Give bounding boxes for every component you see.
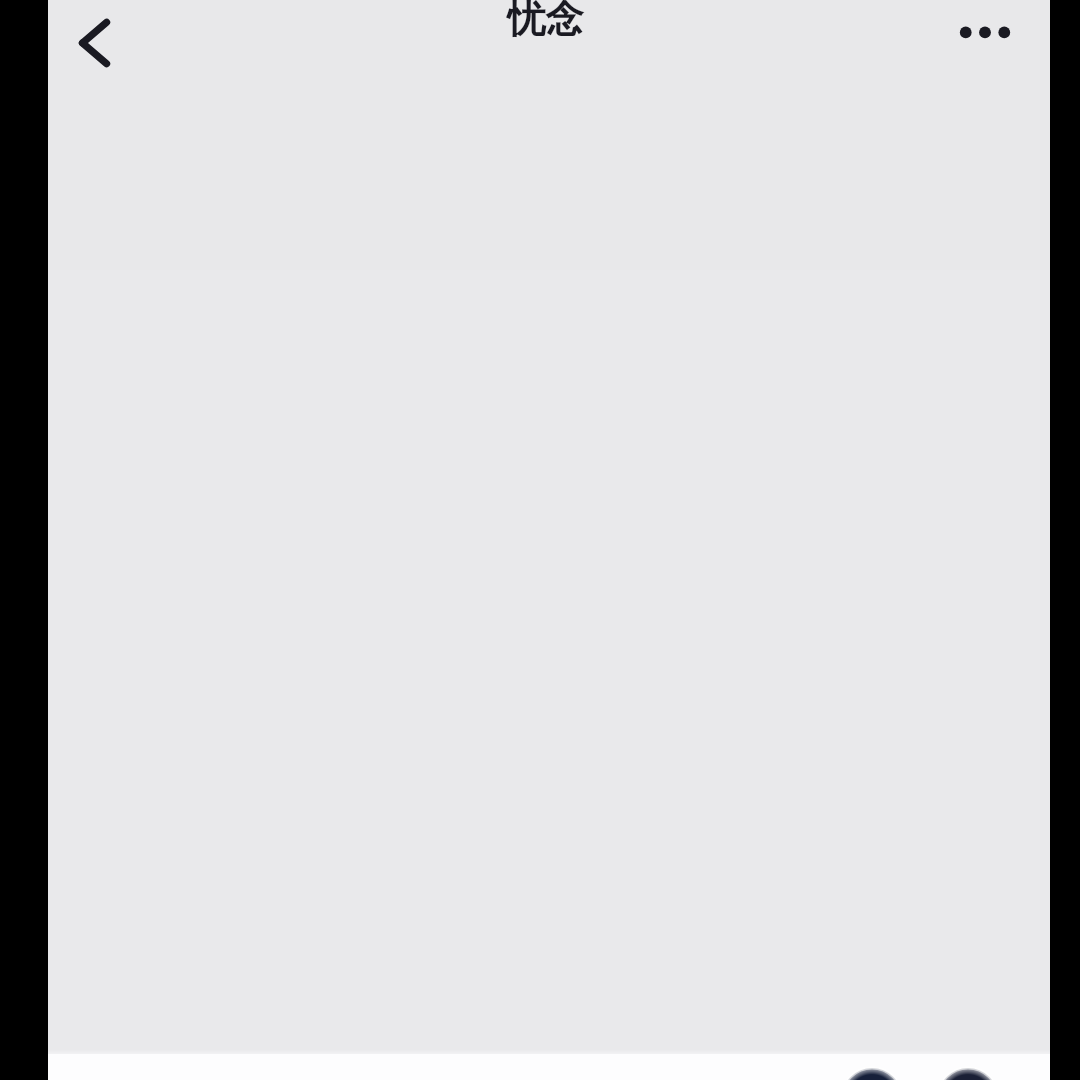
button[interactable]: More options (944, 2, 1026, 64)
staticText: 忧念 (507, 0, 584, 43)
button[interactable]: 忧念 (420, 0, 670, 50)
button[interactable] (842, 1068, 902, 1080)
button[interactable]: Back (62, 6, 124, 80)
button[interactable] (938, 1068, 998, 1080)
